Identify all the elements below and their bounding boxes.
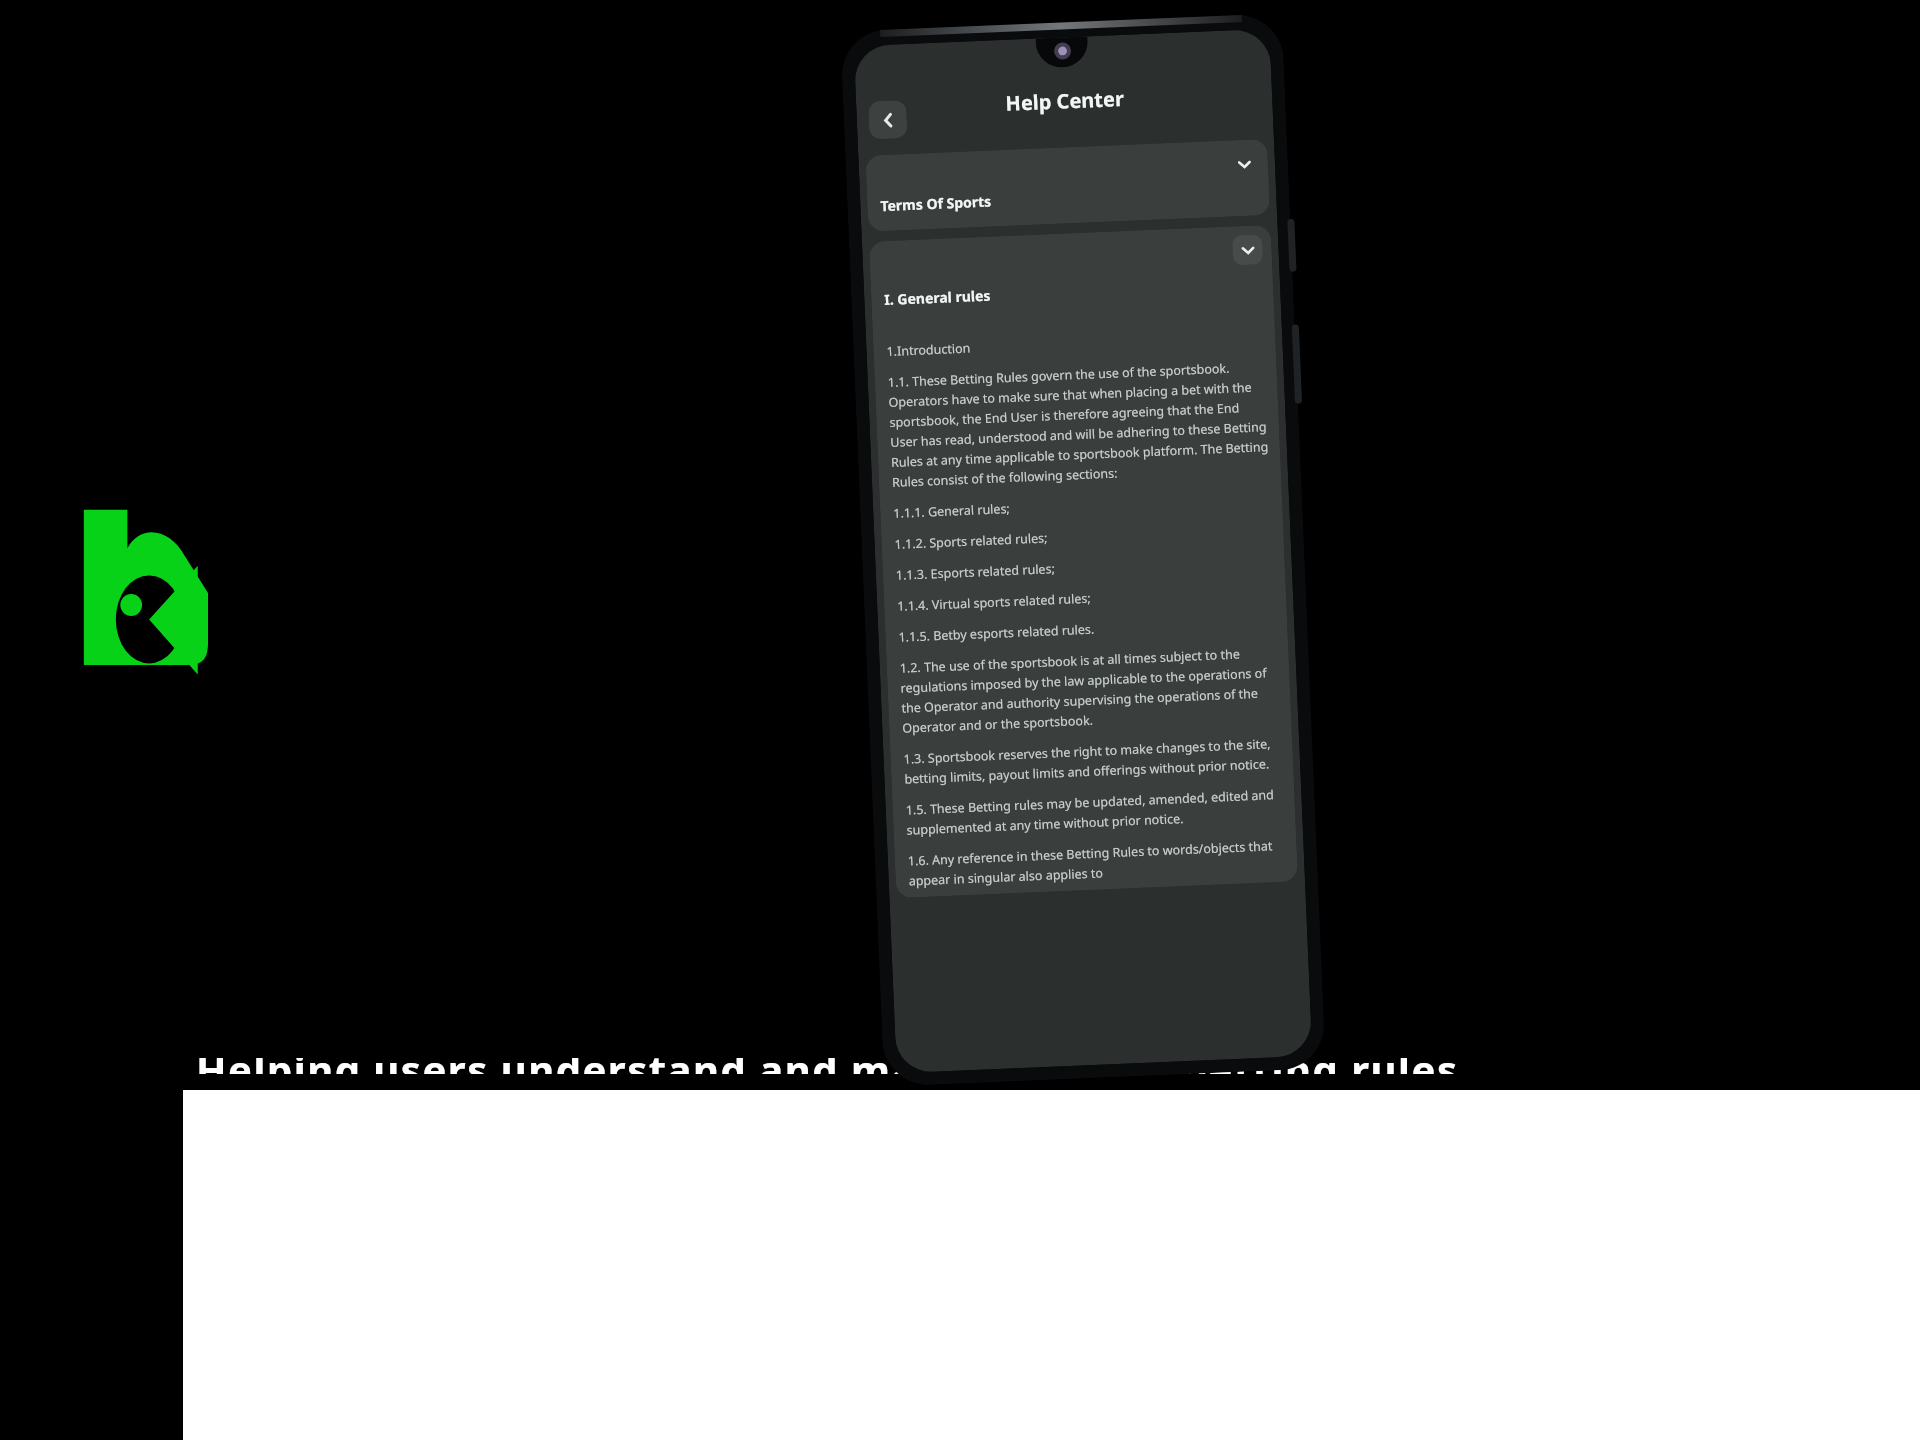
staticText: Help Center — [1005, 85, 1125, 117]
staticText: 1.5. These Betting rules may be updated,… — [905, 786, 1285, 839]
staticText: 1.Introduction — [886, 339, 971, 360]
staticText: Helping users understand and manage all … — [196, 1058, 1459, 1074]
staticText: 1.1.5. Betby esports related rules. — [898, 621, 1095, 646]
staticText: 1.1.1. General rules; — [893, 500, 1010, 522]
staticText: Terms Of Sports — [880, 191, 992, 215]
other: Expand I. General rules — [1232, 234, 1263, 265]
staticText: 1.6. Any reference in these Betting Rule… — [907, 837, 1287, 890]
staticText: 1.1. These Betting Rules govern the use … — [887, 358, 1270, 491]
staticText: 1.3. Sportsbook reserves the right to ma… — [903, 735, 1282, 788]
button[interactable]: Back — [868, 100, 908, 140]
staticText: I. General rules — [884, 286, 992, 309]
staticText: 1.2. The use of the sportsbook is at all… — [899, 644, 1280, 737]
staticText: 1.1.2. Sports related rules; — [894, 529, 1048, 553]
staticText: 1.1.4. Virtual sports related rules; — [897, 590, 1091, 615]
staticText: 1.1.3. Esports related rules; — [895, 560, 1056, 584]
button[interactable]: I. General rules — [869, 225, 1274, 326]
other: Expand Terms Of Sports — [1228, 148, 1260, 179]
button[interactable]: Terms Of Sports — [865, 139, 1270, 232]
